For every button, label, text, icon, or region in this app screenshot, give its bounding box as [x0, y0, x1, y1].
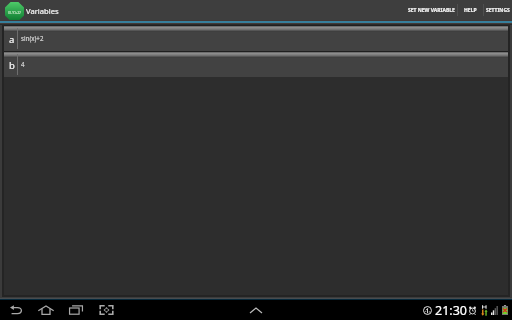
staticText: sin(x)+2: [21, 34, 44, 42]
staticText: Variables: [26, 6, 59, 16]
staticText: b: [9, 59, 15, 72]
button[interactable]: HELP: [458, 0, 483, 20]
staticText: a: [9, 33, 15, 46]
button[interactable]: SET NEW VARIABLE: [405, 0, 457, 20]
staticText: 21:30: [435, 302, 467, 319]
staticText: HELP: [464, 7, 477, 14]
button[interactable]: Full screen: [97, 301, 115, 319]
button[interactable]: Home: [37, 301, 55, 319]
button[interactable]: a: [4, 25, 508, 51]
staticText: 4: [21, 60, 25, 68]
button[interactable]: Show navigation: [245, 300, 267, 320]
button[interactable]: 21:30: [423, 300, 512, 320]
button[interactable]: SETTINGS: [484, 0, 512, 20]
staticText: (X-Y)+Z/: [8, 10, 21, 15]
staticText: SET NEW VARIABLE: [408, 7, 455, 14]
button[interactable]: Back: [7, 301, 25, 319]
staticText: SETTINGS: [486, 7, 510, 14]
button[interactable]: b: [4, 51, 508, 77]
button[interactable]: Recent apps: [67, 301, 85, 319]
